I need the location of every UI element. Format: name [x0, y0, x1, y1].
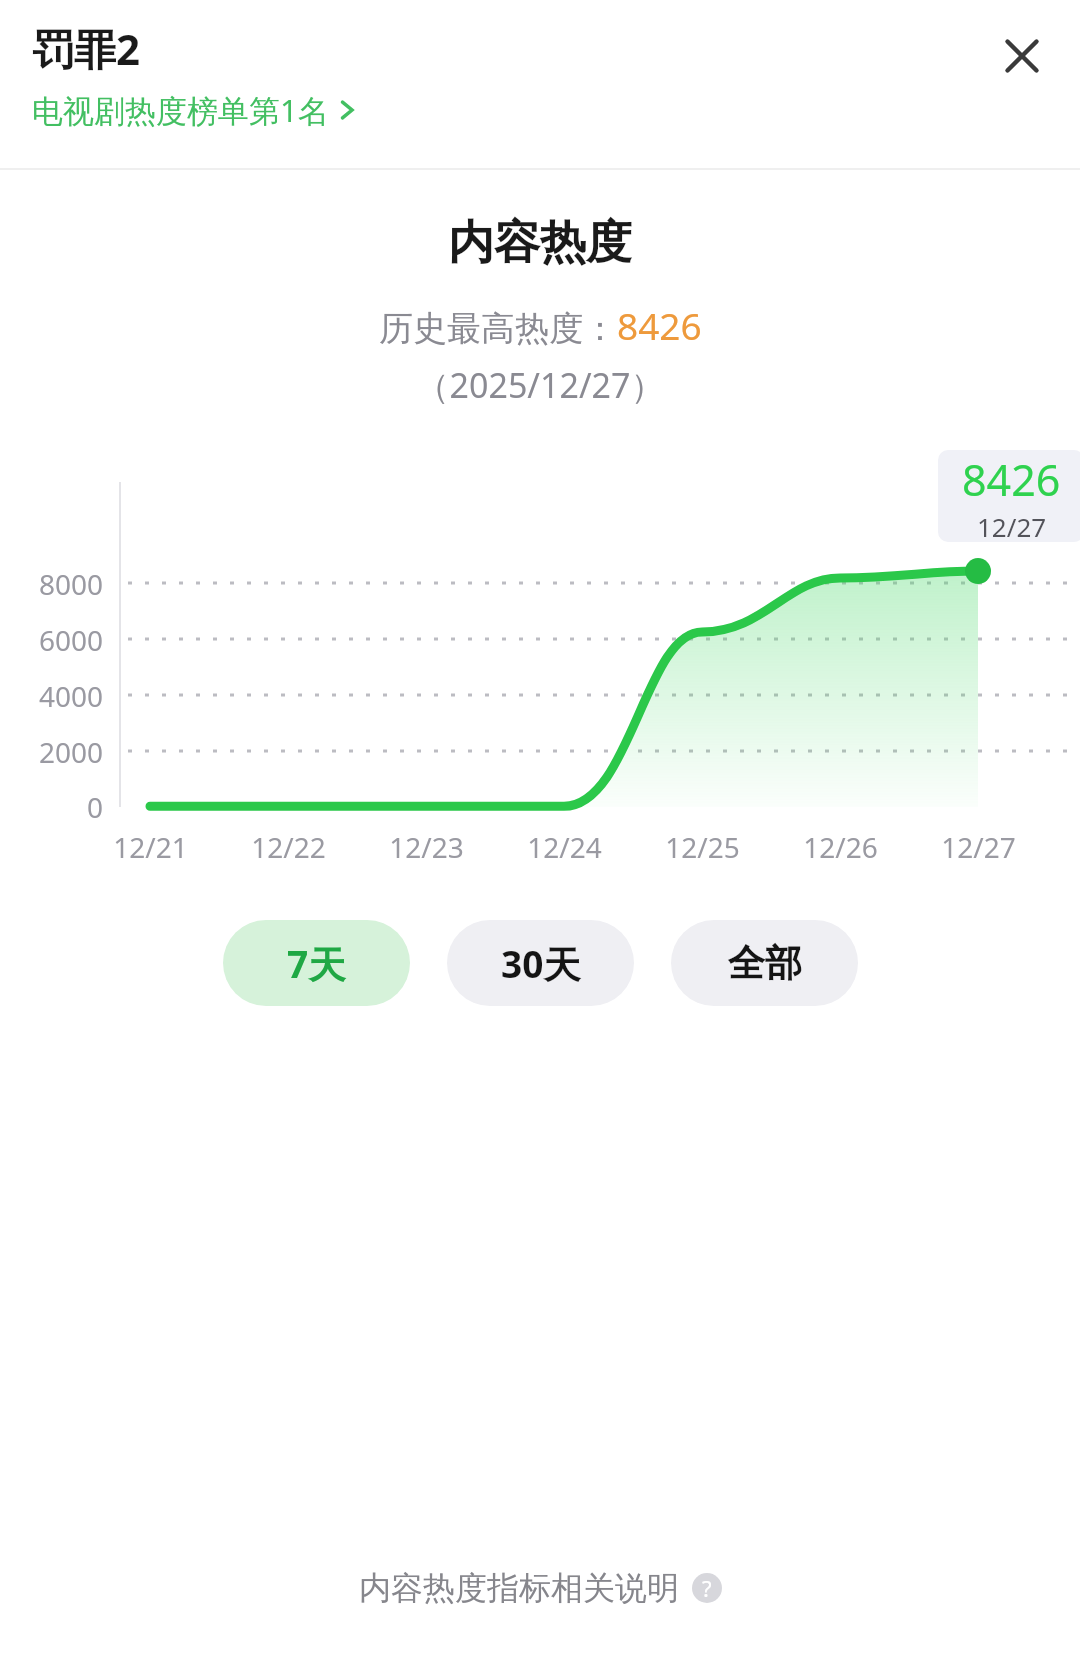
staticText: ? [702, 1573, 712, 1603]
staticText: 0 [87, 788, 104, 826]
button[interactable]: 30天 [447, 920, 634, 1006]
staticText: 12/27 [977, 509, 1047, 542]
staticText: 30天 [501, 938, 581, 989]
button[interactable]: 电视剧热度榜单第1名 [32, 89, 356, 131]
staticText: 12/23 [389, 828, 464, 866]
staticText: 12/27 [941, 828, 1016, 866]
staticText: 12/24 [527, 828, 602, 866]
staticText: 7天 [287, 938, 346, 989]
staticText: 8426 [962, 450, 1061, 509]
staticText: 12/26 [803, 828, 878, 866]
staticText: 罚罪2 [32, 20, 141, 77]
staticText: 内容热度 [0, 214, 1080, 272]
staticText: 6000 [39, 621, 104, 659]
staticText: 8426 [617, 300, 702, 350]
staticText: 12/25 [665, 828, 740, 866]
staticText: 内容热度指标相关说明 [359, 1568, 679, 1608]
staticText: 8000 [39, 565, 104, 603]
staticText: 2000 [39, 733, 104, 771]
staticText: 全部 [728, 940, 802, 987]
button[interactable]: 内容热度指标相关说明 [359, 1568, 722, 1608]
staticText: 12/22 [251, 828, 326, 866]
staticText: 历史最高热度： [379, 307, 617, 350]
button[interactable]: 全部 [671, 920, 858, 1006]
staticText: （2025/12/27） [0, 362, 1080, 408]
staticText: 12/21 [113, 828, 188, 866]
button[interactable]: Close [982, 16, 1062, 96]
staticText: 电视剧热度榜单第1名 [32, 89, 329, 131]
staticText: 4000 [39, 677, 104, 715]
button[interactable]: 7天 [223, 920, 410, 1006]
